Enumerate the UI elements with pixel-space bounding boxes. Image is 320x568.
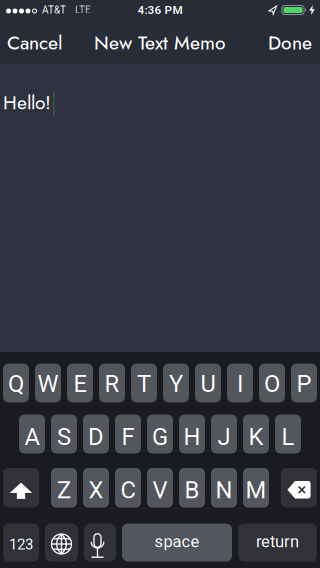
staticText: U	[200, 370, 215, 398]
button[interactable]: L	[275, 414, 301, 453]
staticText: N	[215, 476, 232, 504]
staticText: P	[296, 370, 311, 398]
button[interactable]: H	[179, 414, 205, 453]
staticText: LTE	[75, 4, 91, 16]
staticText: E	[73, 370, 86, 398]
button[interactable]: K	[243, 414, 269, 453]
staticText: L	[281, 423, 294, 451]
staticText: A	[24, 423, 39, 451]
staticText: D	[88, 423, 104, 451]
staticText: AT&T	[42, 4, 66, 16]
button[interactable]: A	[19, 414, 45, 453]
button[interactable]: Delete	[281, 468, 317, 507]
staticText: Y	[169, 370, 183, 398]
staticText: 123	[9, 536, 33, 553]
button[interactable]: Dictate	[84, 523, 116, 561]
staticText: Z	[57, 476, 71, 504]
button[interactable]: Y	[163, 363, 189, 402]
staticText: G	[152, 423, 168, 451]
button[interactable]: E	[67, 363, 93, 402]
button[interactable]: N	[211, 468, 237, 507]
staticText: T	[137, 370, 151, 398]
button[interactable]: J	[211, 414, 237, 453]
button[interactable]: S	[51, 414, 77, 453]
button[interactable]: F	[115, 414, 141, 453]
staticText: R	[104, 370, 119, 398]
button[interactable]: I	[227, 363, 253, 402]
staticText: space	[154, 532, 199, 551]
staticText: Q	[8, 370, 24, 398]
staticText: Cancel	[7, 29, 63, 57]
button[interactable]: space	[122, 523, 232, 561]
staticText: Hello!	[3, 89, 51, 116]
staticText: K	[248, 423, 263, 451]
staticText: V	[152, 476, 167, 504]
button[interactable]: Done	[268, 28, 320, 56]
button[interactable]: B	[179, 468, 205, 507]
staticText: X	[88, 476, 103, 504]
button[interactable]: Shift	[3, 468, 39, 507]
button[interactable]: P	[291, 363, 317, 402]
button[interactable]: T	[131, 363, 157, 402]
button[interactable]: Q	[3, 363, 29, 402]
staticText: M	[245, 476, 266, 504]
button[interactable]: W	[35, 363, 61, 402]
button[interactable]: V	[147, 468, 173, 507]
button[interactable]: C	[115, 468, 141, 507]
button[interactable]: O	[259, 363, 285, 402]
staticText: B	[184, 476, 199, 504]
staticText: S	[57, 423, 71, 451]
staticText: Done	[268, 29, 312, 57]
button[interactable]: return	[238, 523, 317, 561]
button[interactable]: Next keyboard	[45, 523, 78, 561]
button[interactable]: D	[83, 414, 109, 453]
button[interactable]: M	[243, 468, 269, 507]
staticText: O	[264, 370, 280, 398]
staticText: New Text Memo	[94, 29, 226, 57]
staticText: F	[121, 423, 134, 451]
staticText: W	[37, 370, 58, 398]
button[interactable]: G	[147, 414, 173, 453]
button[interactable]: Cancel	[0, 28, 63, 56]
staticText: I	[237, 370, 243, 398]
button[interactable]: 123	[3, 523, 39, 561]
button[interactable]: X	[83, 468, 109, 507]
staticText: return	[256, 532, 299, 551]
button[interactable]: Z	[51, 468, 77, 507]
button[interactable]: U	[195, 363, 221, 402]
staticText: J	[217, 423, 230, 451]
staticText: 4:36 PM	[137, 3, 182, 17]
staticText: C	[120, 476, 135, 504]
button[interactable]: R	[99, 363, 125, 402]
staticText: H	[183, 423, 200, 451]
